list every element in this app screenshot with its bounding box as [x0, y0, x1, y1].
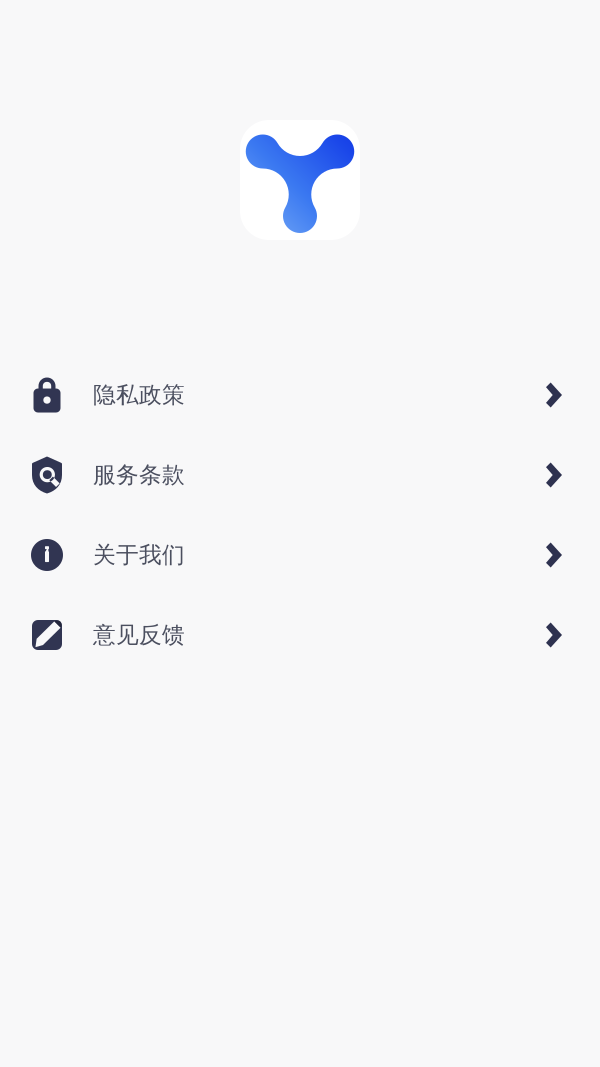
staticText: 关于我们: [93, 541, 185, 569]
staticText: 隐私政策: [93, 381, 185, 409]
staticText: 服务条款: [93, 461, 185, 489]
staticText: 意见反馈: [93, 621, 185, 649]
button[interactable]: 服务条款: [0, 435, 600, 515]
button[interactable]: 关于我们: [0, 515, 600, 595]
button[interactable]: 意见反馈: [0, 595, 600, 675]
button[interactable]: 隐私政策: [0, 355, 600, 435]
